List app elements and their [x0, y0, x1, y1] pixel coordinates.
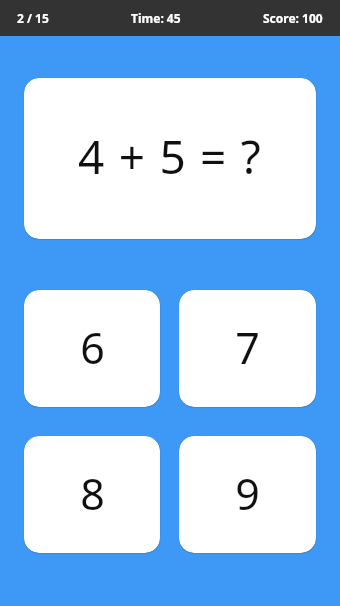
button[interactable]: 6 [24, 290, 160, 407]
staticText: 4 + 5 = ? [78, 125, 262, 188]
staticText: 8 [80, 464, 105, 523]
button[interactable]: 7 [179, 290, 316, 407]
staticText: Score: 100 [263, 10, 323, 26]
staticText: 2 / 15 [17, 10, 49, 26]
staticText: 6 [80, 318, 105, 377]
staticText: 9 [235, 464, 260, 523]
staticText: 7 [235, 318, 260, 377]
button[interactable]: 8 [24, 436, 160, 553]
staticText: Time: 45 [131, 10, 181, 26]
button[interactable]: 9 [179, 436, 316, 553]
other: Question 4 + 5 = ? [24, 78, 316, 239]
